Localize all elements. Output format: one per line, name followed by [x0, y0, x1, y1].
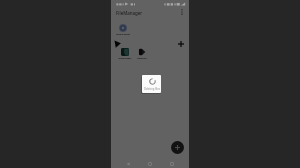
button[interactable]: Back: [121, 159, 135, 168]
button[interactable]: Record Sheet: [109, 24, 137, 36]
button[interactable]: More options: [177, 7, 187, 17]
button[interactable]: Recorder: [128, 48, 156, 60]
staticText: FileManager: [116, 10, 143, 16]
button[interactable]: Add: [175, 38, 186, 49]
staticText: Recorder: [137, 57, 147, 60]
staticText: Record Sheet: [116, 33, 130, 36]
staticText: Deleting files: [144, 87, 160, 91]
button[interactable]: Recents: [165, 159, 179, 168]
button[interactable]: Home: [143, 159, 157, 168]
button[interactable]: New folder: [171, 141, 184, 154]
button[interactable]: Filemanager: [111, 48, 139, 60]
staticText: Filemanager: [118, 57, 132, 60]
